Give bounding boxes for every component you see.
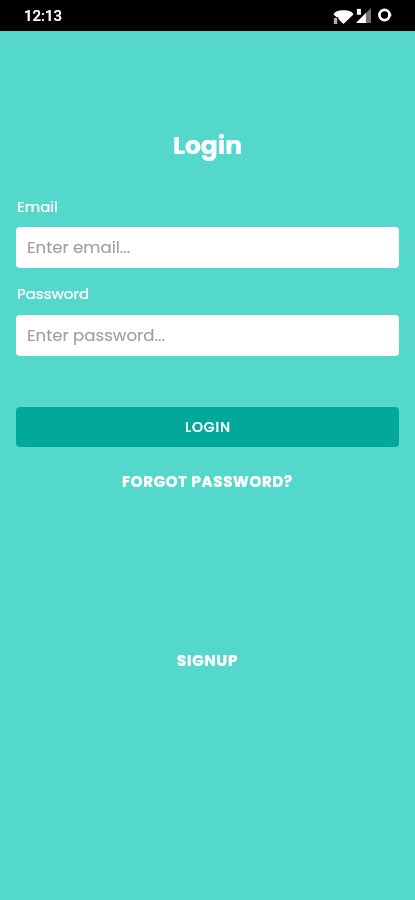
button[interactable]: SIGNUP xyxy=(169,645,247,676)
staticText: Enter email... xyxy=(27,236,131,259)
staticText: Enter password... xyxy=(27,324,165,347)
button[interactable]: Enter password... xyxy=(16,315,399,356)
staticText: Password xyxy=(17,283,90,304)
other: Mobile signal xyxy=(356,8,371,23)
button[interactable]: LOGIN xyxy=(16,407,399,447)
staticText: Login xyxy=(0,128,415,163)
staticText: FORGOT PASSWORD? xyxy=(122,471,293,492)
staticText: SIGNUP xyxy=(177,650,239,671)
button[interactable]: FORGOT PASSWORD? xyxy=(114,466,301,497)
staticText: 12:13 xyxy=(24,7,63,25)
staticText: LOGIN xyxy=(185,417,231,437)
button[interactable]: Enter email... xyxy=(16,227,399,268)
other: Battery xyxy=(377,7,393,23)
staticText: Email xyxy=(17,196,58,217)
other: Wi-Fi connected xyxy=(333,8,354,24)
